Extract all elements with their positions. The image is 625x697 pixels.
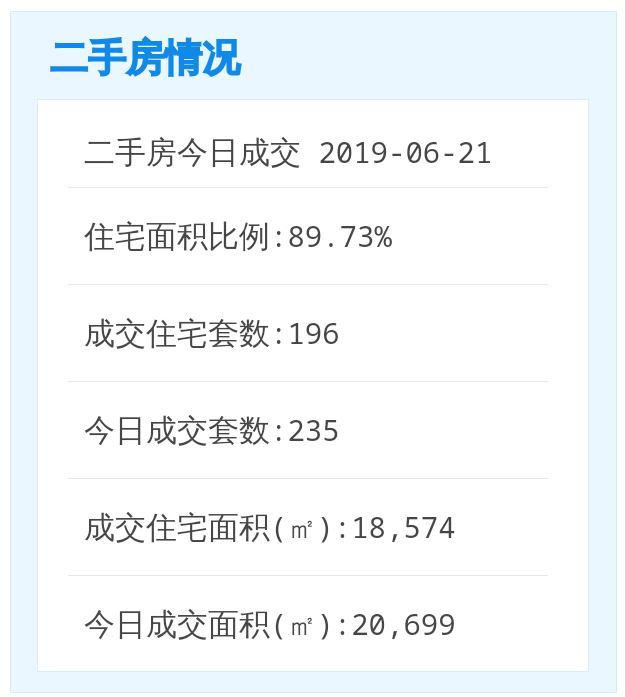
button[interactable]: 今日成交面积(㎡):20,699 [37,576,589,672]
staticText: 成交住宅面积(㎡):18,574 [84,507,456,547]
staticText: 二手房今日成交 2019-06-21 [84,132,493,172]
other: 二手房成交数据列表 [37,99,589,672]
button[interactable]: 二手房情况 [50,34,240,82]
staticText: 今日成交面积(㎡):20,699 [84,604,456,644]
button[interactable]: 住宅面积比例:89.73% [37,188,589,284]
staticText: 住宅面积比例:89.73% [84,216,392,256]
staticText: 成交住宅套数:196 [84,313,340,353]
staticText: 今日成交套数:235 [84,410,340,450]
button[interactable]: 二手房今日成交 2019-06-21 [37,99,589,187]
button[interactable]: 成交住宅套数:196 [37,285,589,381]
staticText: 二手房情况 [50,34,240,82]
button[interactable]: 成交住宅面积(㎡):18,574 [37,479,589,575]
button[interactable]: 今日成交套数:235 [37,382,589,478]
